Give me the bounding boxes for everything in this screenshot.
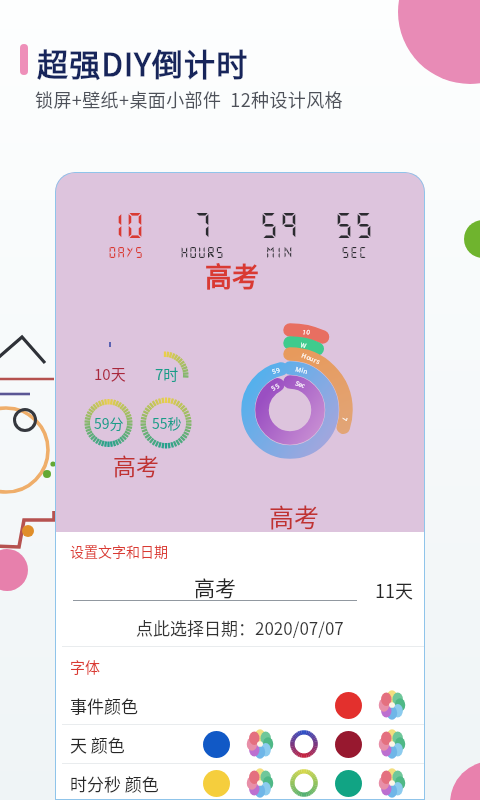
- staticText: SEC: [341, 245, 368, 259]
- button[interactable]: color option 5: [370, 686, 414, 724]
- button[interactable]: color option 4: [326, 764, 370, 800]
- button[interactable]: color option 5: [370, 725, 414, 763]
- staticText: 11天: [375, 577, 413, 603]
- staticText: 7: [192, 209, 213, 241]
- staticText: HOURS: [180, 245, 224, 259]
- staticText: 高考: [113, 448, 159, 481]
- button[interactable]: color option 3: [282, 725, 326, 763]
- button[interactable]: color option 2: [238, 764, 282, 800]
- staticText: 7时: [155, 363, 179, 383]
- button[interactable]: 点此选择日期：2020/07/07: [55, 612, 425, 642]
- staticText: 设置文字和日期: [70, 541, 168, 561]
- button[interactable]: color option 1: [194, 764, 238, 800]
- button[interactable]: color option 4: [326, 725, 370, 763]
- button[interactable]: color option 2: [238, 725, 282, 763]
- button[interactable]: 高考: [73, 572, 357, 602]
- staticText: 59: [259, 209, 300, 241]
- button[interactable]: color option 4: [326, 686, 370, 724]
- staticText: 高考: [269, 498, 320, 534]
- staticText: 超强DIY倒计时: [37, 40, 249, 85]
- staticText: 点此选择日期：2020/07/07: [136, 615, 344, 640]
- staticText: 55: [334, 209, 375, 241]
- staticText: 高考: [194, 572, 236, 602]
- staticText: 55秒: [152, 413, 182, 432]
- staticText: 高考: [205, 256, 259, 295]
- button[interactable]: color option 3: [282, 764, 326, 800]
- staticText: DAYS: [108, 245, 144, 259]
- button[interactable]: color option 5: [370, 764, 414, 800]
- staticText: 字体: [70, 656, 101, 678]
- staticText: 锁屏+壁纸+桌面小部件 12种设计风格: [35, 86, 344, 112]
- staticText: 10: [105, 209, 146, 241]
- button[interactable]: color option 1: [194, 725, 238, 763]
- staticText: 10天: [94, 363, 126, 383]
- staticText: 天 颜色: [70, 732, 125, 757]
- staticText: 59分: [94, 413, 124, 432]
- staticText: 时分秒 颜色: [70, 771, 159, 796]
- staticText: 事件颜色: [70, 693, 138, 718]
- staticText: MIN: [266, 245, 293, 259]
